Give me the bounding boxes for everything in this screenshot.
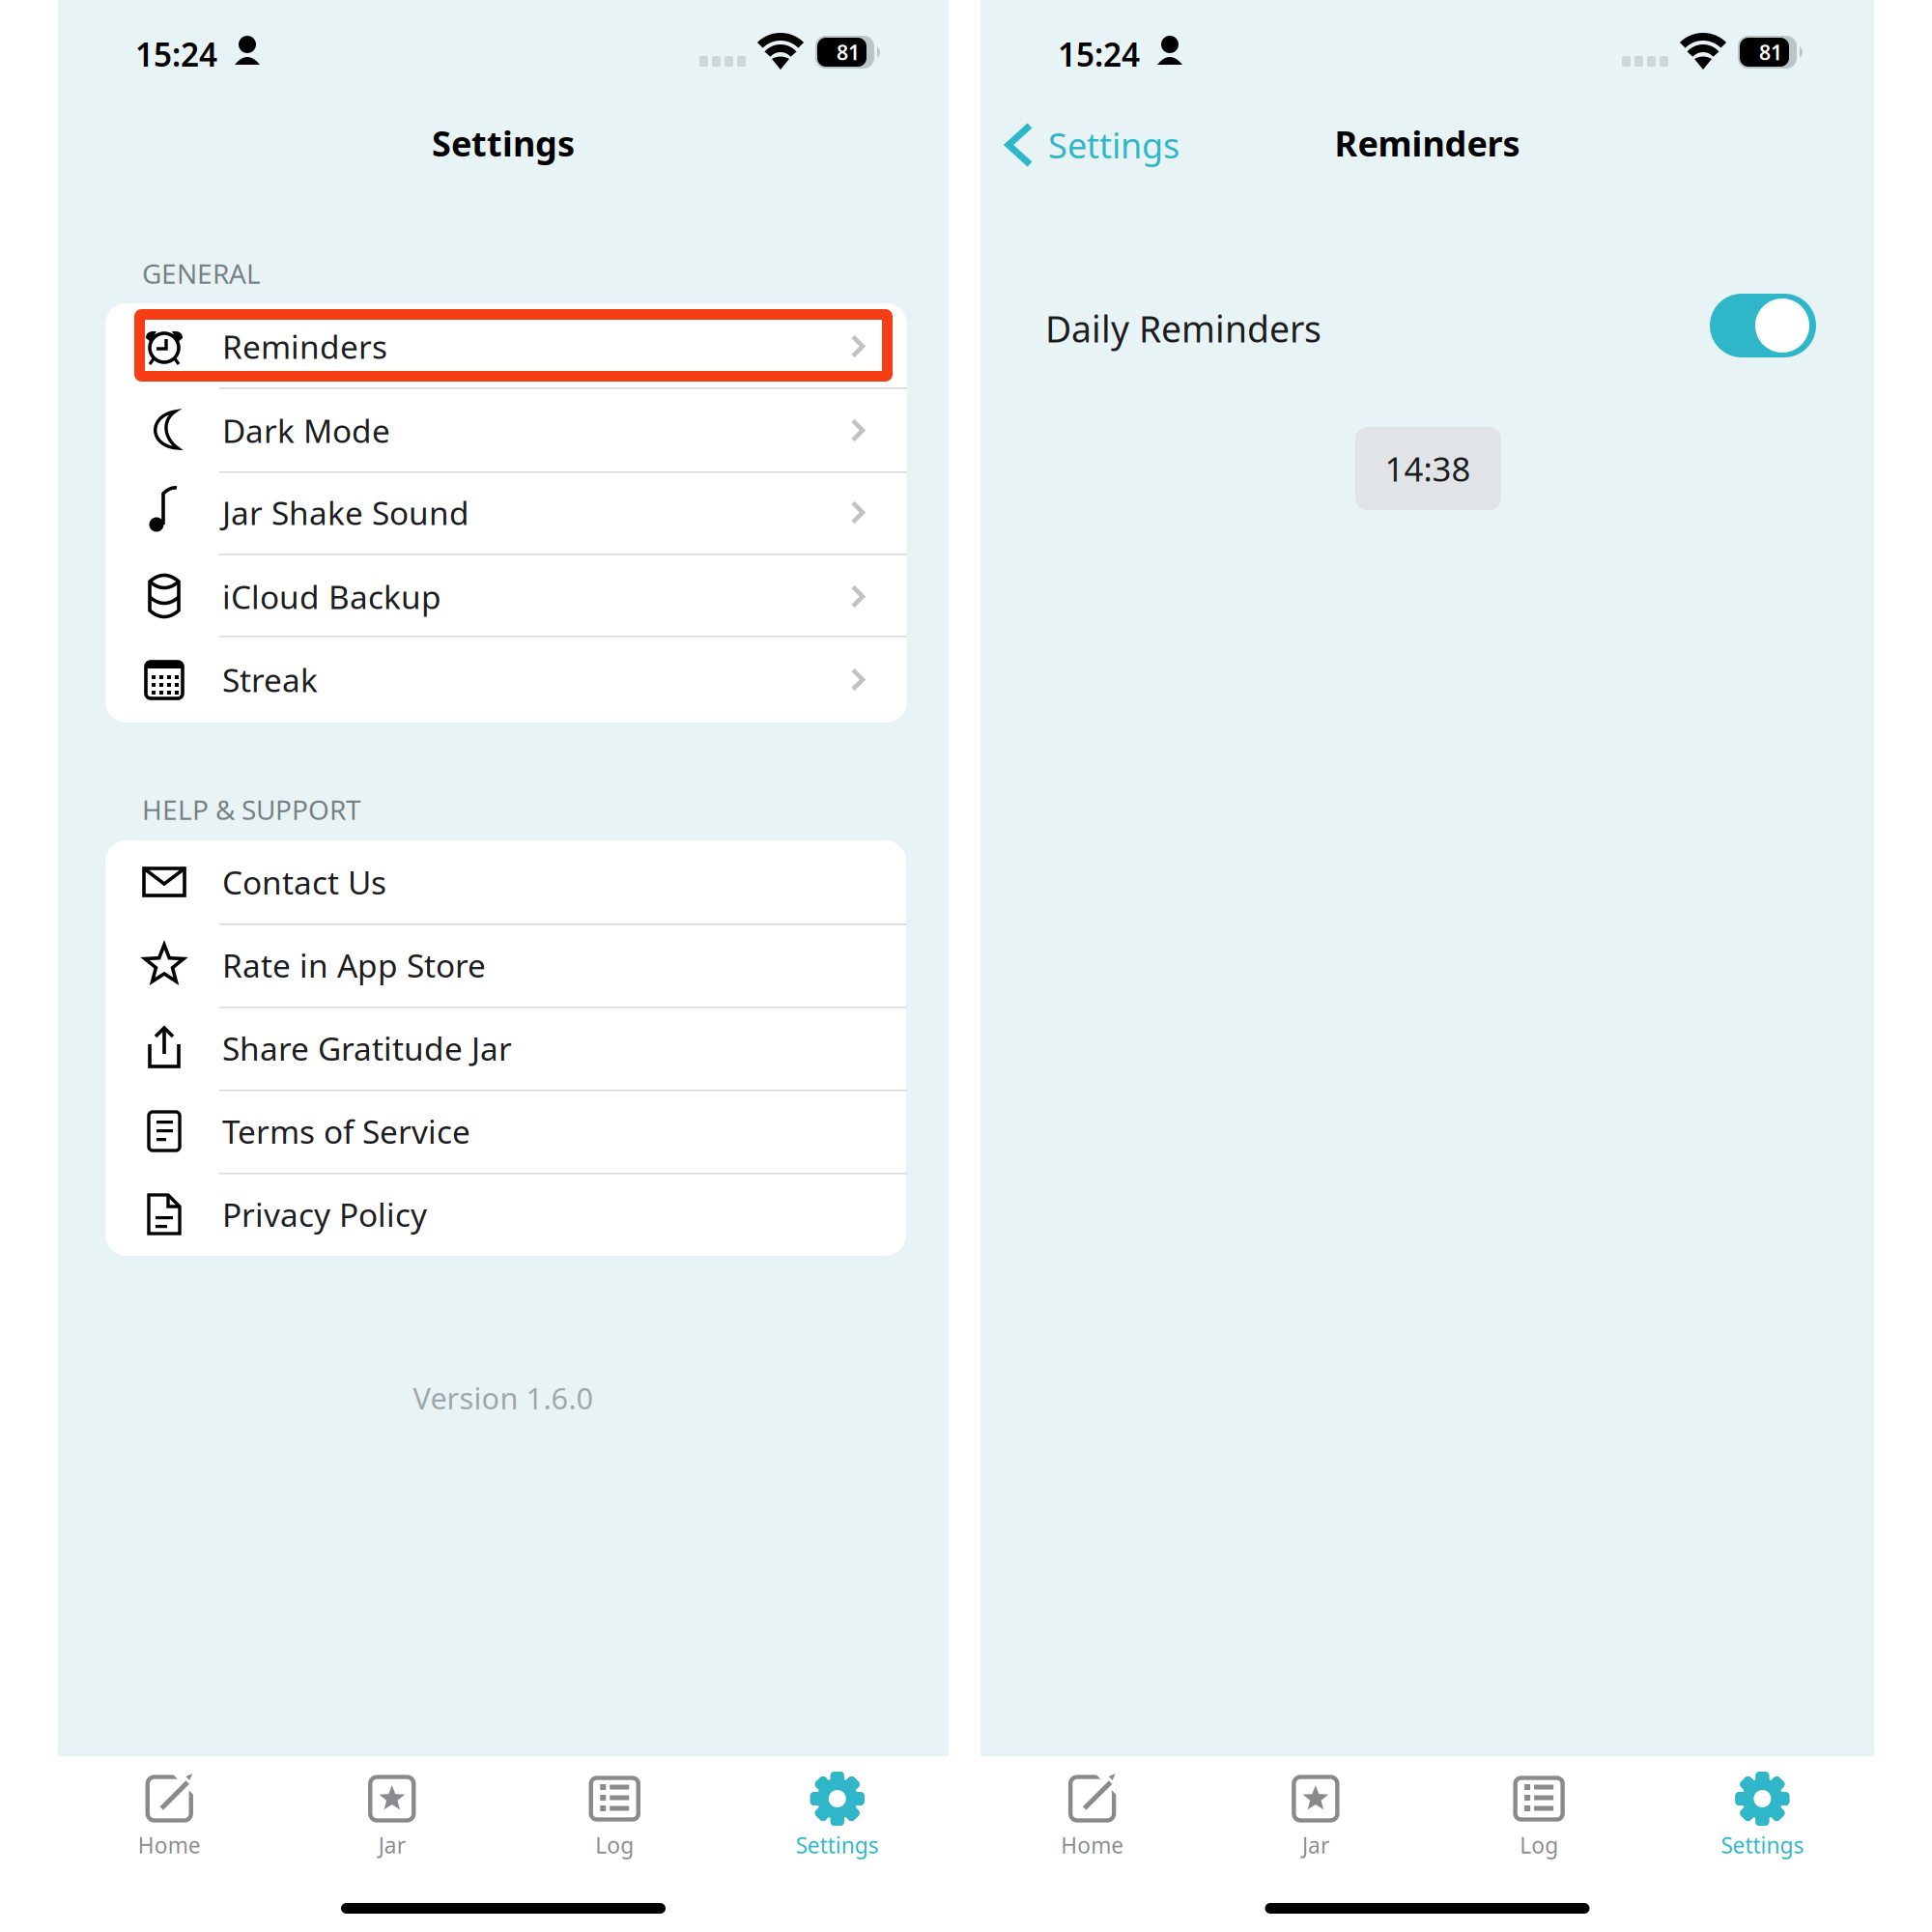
staticText: Share Gratitude Jar: [222, 1027, 512, 1070]
staticText: Home: [138, 1830, 201, 1860]
staticText: 15:24: [1058, 33, 1140, 76]
button[interactable]: Home: [0, 0, 1932, 1932]
staticText: 14:38: [1385, 446, 1471, 491]
button[interactable]: Daily Reminders toggle: [0, 0, 1932, 1932]
staticText: Version 1.6.0: [413, 1378, 594, 1417]
button[interactable]: Home: [0, 0, 1932, 1932]
staticText: Log: [1520, 1830, 1558, 1860]
staticText: GENERAL: [142, 255, 261, 291]
staticText: HELP & SUPPORT: [142, 792, 361, 827]
staticText: 81: [837, 38, 860, 66]
button[interactable]: Streak: [0, 0, 1932, 1932]
staticText: 81: [1759, 38, 1782, 66]
button[interactable]: Terms of Service: [0, 0, 1932, 1932]
staticText: Dark Mode: [222, 409, 390, 452]
staticText: Terms of Service: [222, 1110, 470, 1153]
staticText: Jar: [378, 1830, 406, 1860]
button[interactable]: iCloud Backup: [0, 0, 1932, 1932]
button[interactable]: 14:38: [0, 0, 1932, 1932]
staticText: Settings: [796, 1830, 879, 1860]
staticText: Jar Shake Sound: [222, 491, 469, 534]
staticText: Reminders: [1335, 120, 1520, 166]
staticText: Home: [1061, 1830, 1124, 1860]
button[interactable]: Reminders: [0, 0, 1932, 1932]
button[interactable]: Jar Shake Sound: [0, 0, 1932, 1932]
button[interactable]: Settings: [0, 0, 1932, 1932]
staticText: Streak: [222, 658, 318, 701]
button[interactable]: Settings: [0, 0, 1932, 1932]
staticText: Daily Reminders: [1045, 304, 1321, 352]
staticText: Reminders: [222, 325, 387, 368]
staticText: 15:24: [135, 33, 217, 76]
staticText: Settings: [1048, 122, 1179, 168]
staticText: Settings: [432, 120, 575, 166]
staticText: Privacy Policy: [222, 1193, 427, 1236]
button[interactable]: Jar: [0, 0, 1932, 1932]
staticText: Settings: [1721, 1830, 1804, 1860]
button[interactable]: Rate in App Store: [0, 0, 1932, 1932]
staticText: Rate in App Store: [222, 944, 486, 986]
staticText: Contact Us: [222, 861, 386, 903]
staticText: Jar: [1302, 1830, 1329, 1860]
button[interactable]: Log: [0, 0, 1932, 1932]
staticText: Log: [595, 1830, 634, 1860]
button[interactable]: Contact Us: [0, 0, 1932, 1932]
button[interactable]: Jar: [0, 0, 1932, 1932]
button[interactable]: Log: [0, 0, 1932, 1932]
staticText: iCloud Backup: [222, 575, 441, 618]
button[interactable]: Privacy Policy: [0, 0, 1932, 1932]
button[interactable]: Share Gratitude Jar: [0, 0, 1932, 1932]
button[interactable]: Back to Settings: [0, 0, 1932, 1932]
button[interactable]: Dark Mode: [0, 0, 1932, 1932]
